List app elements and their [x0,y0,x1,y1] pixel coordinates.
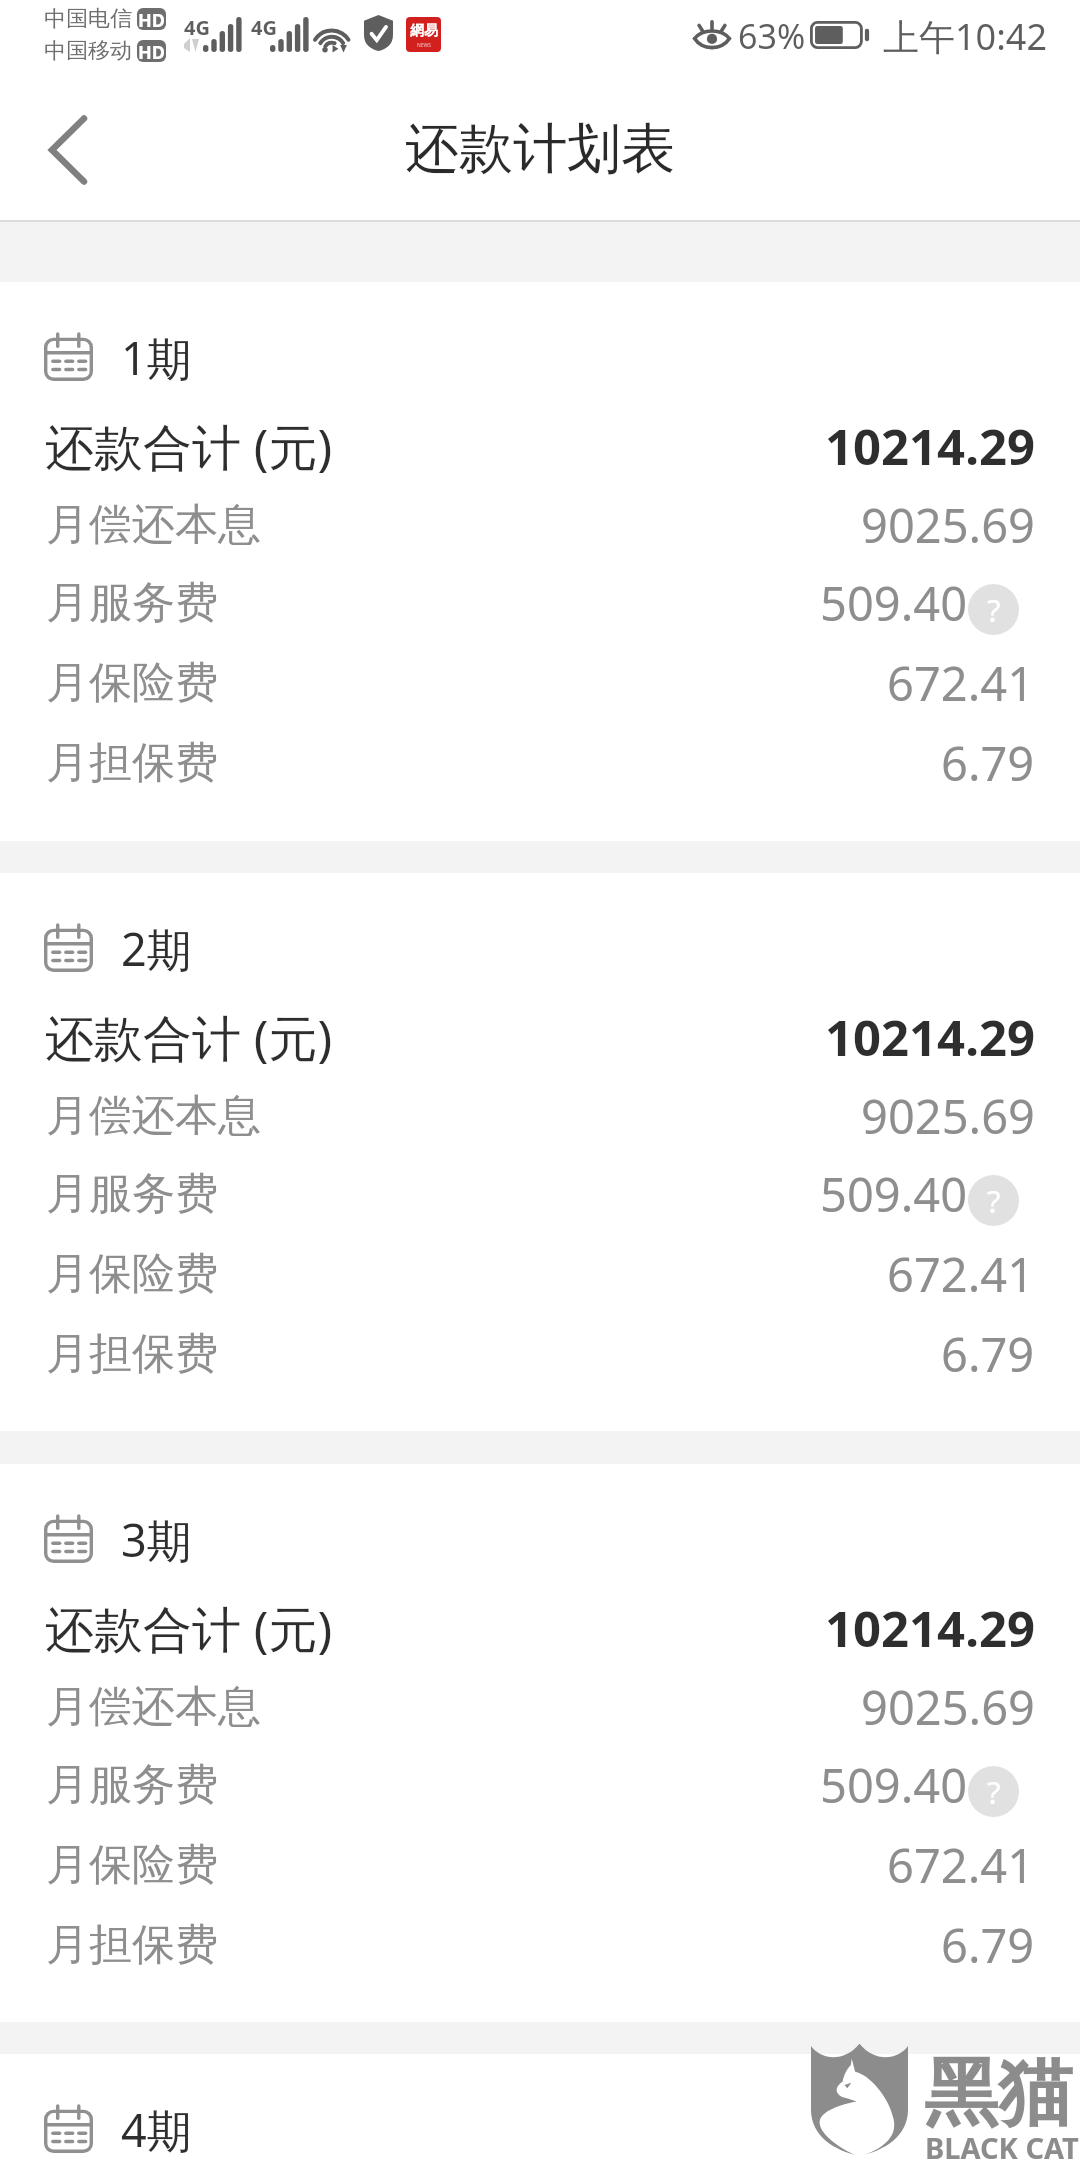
staticText: 10214.29 [825,413,1035,480]
staticText: HD [138,40,165,62]
staticText: 月服务费 [46,1758,218,1812]
staticText: 509.40 [820,571,968,635]
staticText: HD [138,8,165,30]
staticText: 月服务费 [46,1167,218,1221]
staticText: 还款合计 (元) [45,1595,333,1662]
staticText: 6.79 [941,1913,1035,1977]
button[interactable]: Help [968,584,1019,635]
staticText: 672.41 [887,1242,1035,1306]
staticText: 4G [251,14,277,41]
staticText: 月服务费 [46,576,218,630]
button[interactable]: Back [0,78,132,222]
button[interactable]: Help [968,1175,1019,1226]
staticText: 6.79 [941,1322,1035,1386]
staticText: 6.79 [941,731,1035,795]
staticText: 9025.69 [861,1084,1035,1148]
staticText: 月担保费 [46,736,218,790]
staticText: 1期 [121,327,192,388]
staticText: 63% [738,13,806,59]
button[interactable]: 3期 [0,1464,1080,2022]
staticText: 月保险费 [46,656,218,710]
staticText: 上午10:42 [883,12,1048,61]
staticText: 10214.29 [825,1004,1035,1071]
staticText: 509.40 [820,1162,968,1226]
staticText: NEWS [417,42,431,49]
staticText: 509.40 [820,1753,968,1817]
staticText: 10214.29 [825,1595,1035,1662]
staticText: 672.41 [887,651,1035,715]
staticText: 月保险费 [46,1838,218,1892]
button[interactable]: 4期 [0,2054,1080,2160]
staticText: BLACK CAT [925,2128,1079,2160]
staticText: 672.41 [887,1833,1035,1897]
staticText: 黑猫 [924,2047,1072,2140]
staticText: 4期 [121,2099,192,2160]
staticText: 9025.69 [861,493,1035,557]
staticText: 月担保费 [46,1327,218,1381]
staticText: 月保险费 [46,1247,218,1301]
staticText: 2期 [121,918,192,979]
staticText: ? [987,1180,1001,1222]
staticText: 中国移动 [44,37,132,65]
staticText: 網易 [410,22,438,40]
staticText: 中国电信 [44,5,132,33]
staticText: 月偿还本息 [46,1680,261,1734]
staticText: 月担保费 [46,1918,218,1972]
button[interactable]: 2期 [0,873,1080,1431]
staticText: 9025.69 [861,1675,1035,1739]
staticText: 4G [184,14,210,41]
button[interactable]: Help [968,1766,1019,1817]
staticText: 月偿还本息 [46,1089,261,1143]
button[interactable]: 1期 [0,282,1080,841]
staticText: ? [987,1771,1001,1813]
staticText: 3期 [121,1509,192,1570]
staticText: ? [987,589,1001,631]
staticText: 还款合计 (元) [45,413,333,480]
staticText: 还款计划表 [405,115,675,183]
staticText: 月偿还本息 [46,498,261,552]
staticText: 还款合计 (元) [45,1004,333,1071]
